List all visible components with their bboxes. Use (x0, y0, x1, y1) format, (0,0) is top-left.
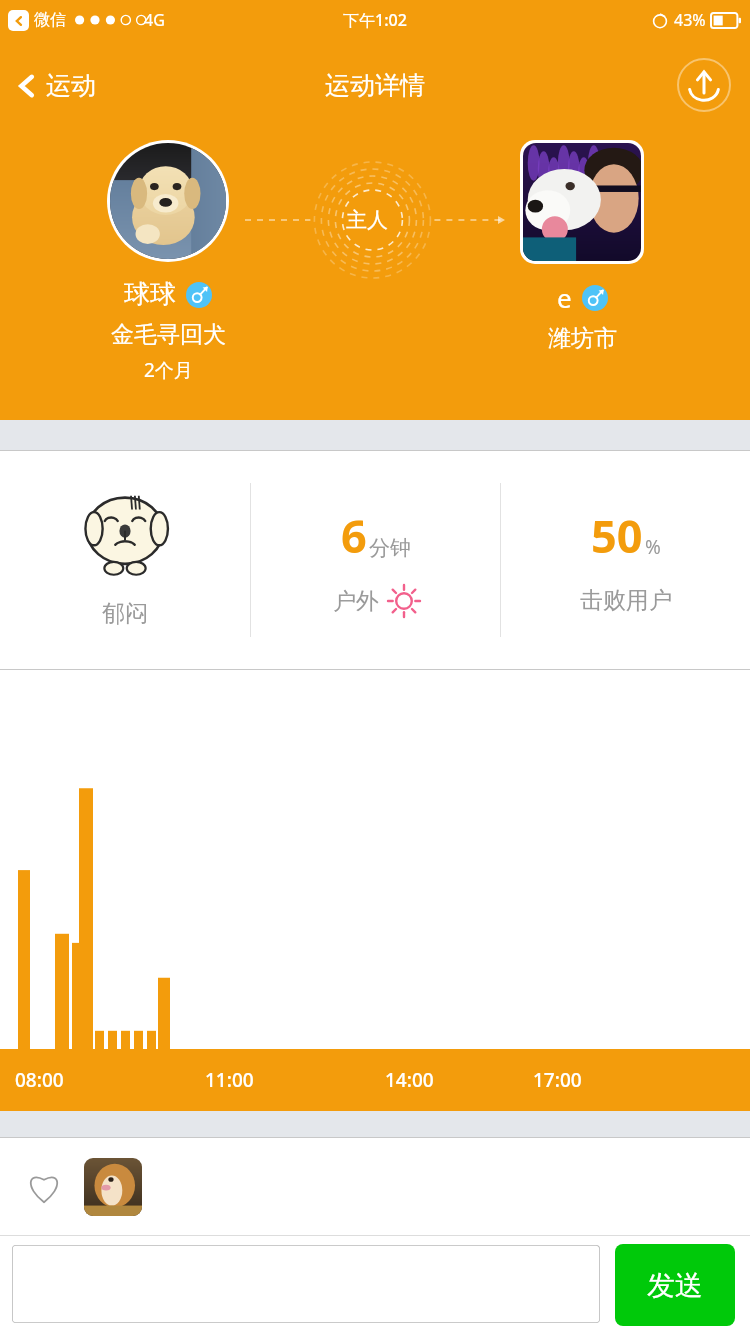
button[interactable]: Message input (12, 1245, 600, 1323)
button[interactable]: 6 (251, 451, 500, 669)
staticText: 2个月 (144, 357, 193, 383)
staticText: 11:00 (205, 1067, 254, 1093)
staticText: 17:00 (533, 1067, 582, 1093)
button[interactable]: 50 (501, 451, 750, 669)
staticText: 运动 (46, 70, 96, 101)
staticText: 户外 (333, 587, 379, 616)
staticText: 微信 (34, 10, 66, 30)
staticText: 郁闷 (102, 599, 148, 628)
staticText: 4G (144, 9, 165, 31)
staticText: 6 (341, 505, 367, 566)
staticText: 运动详情 (325, 70, 425, 101)
staticText: 分钟 (369, 535, 411, 561)
button[interactable]: 发送 (615, 1244, 735, 1326)
staticText: 球球 (124, 278, 176, 311)
staticText: e (557, 280, 572, 315)
button[interactable]: 运动 (10, 64, 102, 107)
staticText: 08:00 (15, 1067, 64, 1093)
staticText: 下午1:02 (343, 9, 407, 31)
staticText: 金毛寻回犬 (111, 320, 226, 349)
button[interactable]: Owner photo (523, 143, 641, 261)
staticText: 击败用户 (580, 586, 672, 615)
button[interactable]: 郁闷 (0, 451, 250, 669)
staticText: 主人 (346, 207, 388, 233)
button[interactable]: Like (22, 1165, 66, 1209)
staticText: 50 (591, 505, 643, 566)
staticText: 潍坊市 (548, 324, 617, 353)
button[interactable]: Pet avatar (110, 143, 226, 259)
staticText: % (645, 534, 661, 560)
staticText: 发送 (647, 1268, 703, 1303)
button[interactable]: Commenter avatar (84, 1158, 142, 1216)
button[interactable]: Share (677, 58, 731, 112)
staticText: 14:00 (385, 1067, 434, 1093)
staticText: 43% (674, 9, 706, 31)
